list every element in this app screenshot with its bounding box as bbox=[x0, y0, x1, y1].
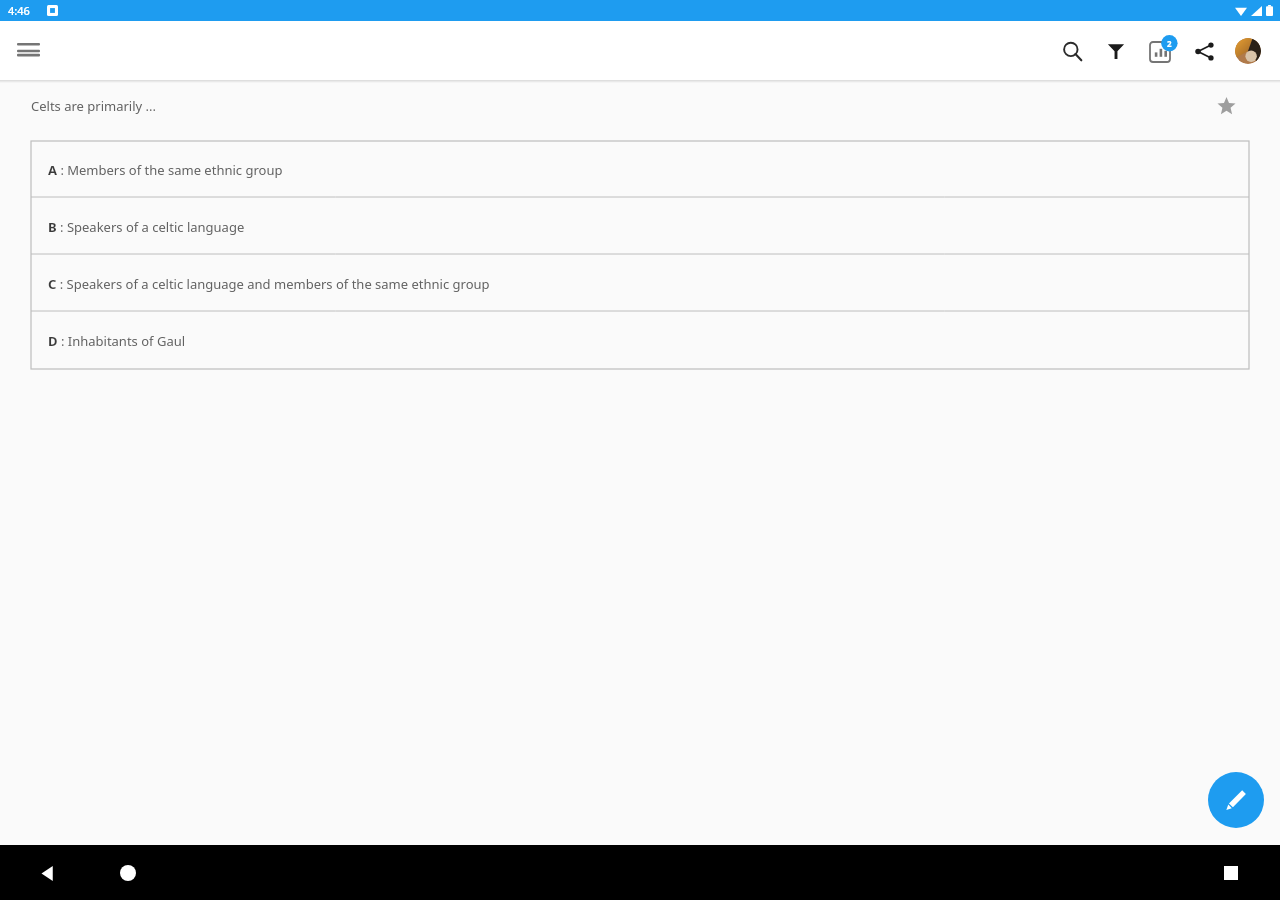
button[interactable]: D : Inhabitants of Gaul bbox=[31, 312, 1249, 369]
staticText: C : Speakers of a celtic language and me… bbox=[48, 275, 490, 293]
button[interactable]: Home bbox=[106, 851, 150, 895]
button[interactable]: Share bbox=[1182, 29, 1226, 73]
button[interactable]: Open navigation drawer bbox=[8, 31, 48, 71]
button[interactable]: Recent apps bbox=[1209, 851, 1253, 895]
button[interactable]: Edit bbox=[1208, 772, 1264, 828]
button[interactable]: Account bbox=[1226, 29, 1270, 73]
button[interactable]: A : Members of the same ethnic group bbox=[31, 141, 1249, 198]
staticText: D : Inhabitants of Gaul bbox=[48, 332, 186, 350]
button[interactable]: B : Speakers of a celtic language bbox=[31, 198, 1249, 255]
button[interactable]: Favorite bbox=[1208, 88, 1244, 124]
button[interactable]: Statistics, 2 new bbox=[1138, 29, 1182, 73]
button[interactable]: Search bbox=[1050, 29, 1094, 73]
staticText: 4:46 bbox=[8, 3, 30, 18]
staticText: 2 bbox=[1167, 38, 1172, 49]
staticText: Celts are primarily ... bbox=[31, 97, 157, 115]
button[interactable]: C : Speakers of a celtic language and me… bbox=[31, 255, 1249, 312]
button[interactable]: Back bbox=[25, 851, 69, 895]
staticText: B : Speakers of a celtic language bbox=[48, 218, 245, 236]
staticText: A : Members of the same ethnic group bbox=[48, 161, 283, 179]
button[interactable]: Filter bbox=[1094, 29, 1138, 73]
